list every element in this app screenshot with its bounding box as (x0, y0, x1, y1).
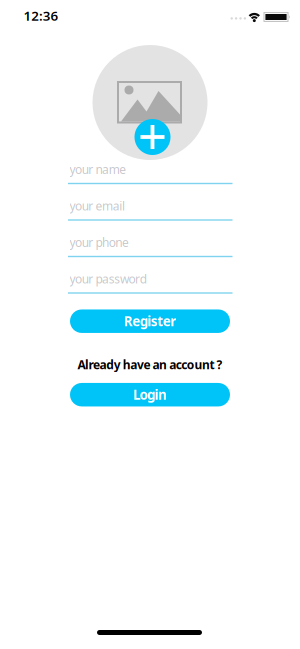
staticText: 12:36 (23, 7, 59, 24)
staticText: your name (69, 161, 126, 177)
button[interactable]: Login (70, 383, 230, 406)
button[interactable]: your name (68, 165, 232, 184)
button[interactable]: your email (68, 202, 232, 221)
staticText: Login (133, 386, 167, 403)
button[interactable]: your password (68, 275, 232, 294)
staticText: your email (69, 198, 125, 214)
button[interactable]: your phone (68, 238, 232, 257)
staticText: your password (69, 271, 147, 287)
staticText: your phone (69, 234, 129, 250)
staticText: Already have an account ? (77, 356, 223, 372)
button[interactable]: Register (70, 309, 230, 333)
button[interactable]: Add photo (134, 118, 171, 155)
staticText: Register (124, 312, 176, 330)
